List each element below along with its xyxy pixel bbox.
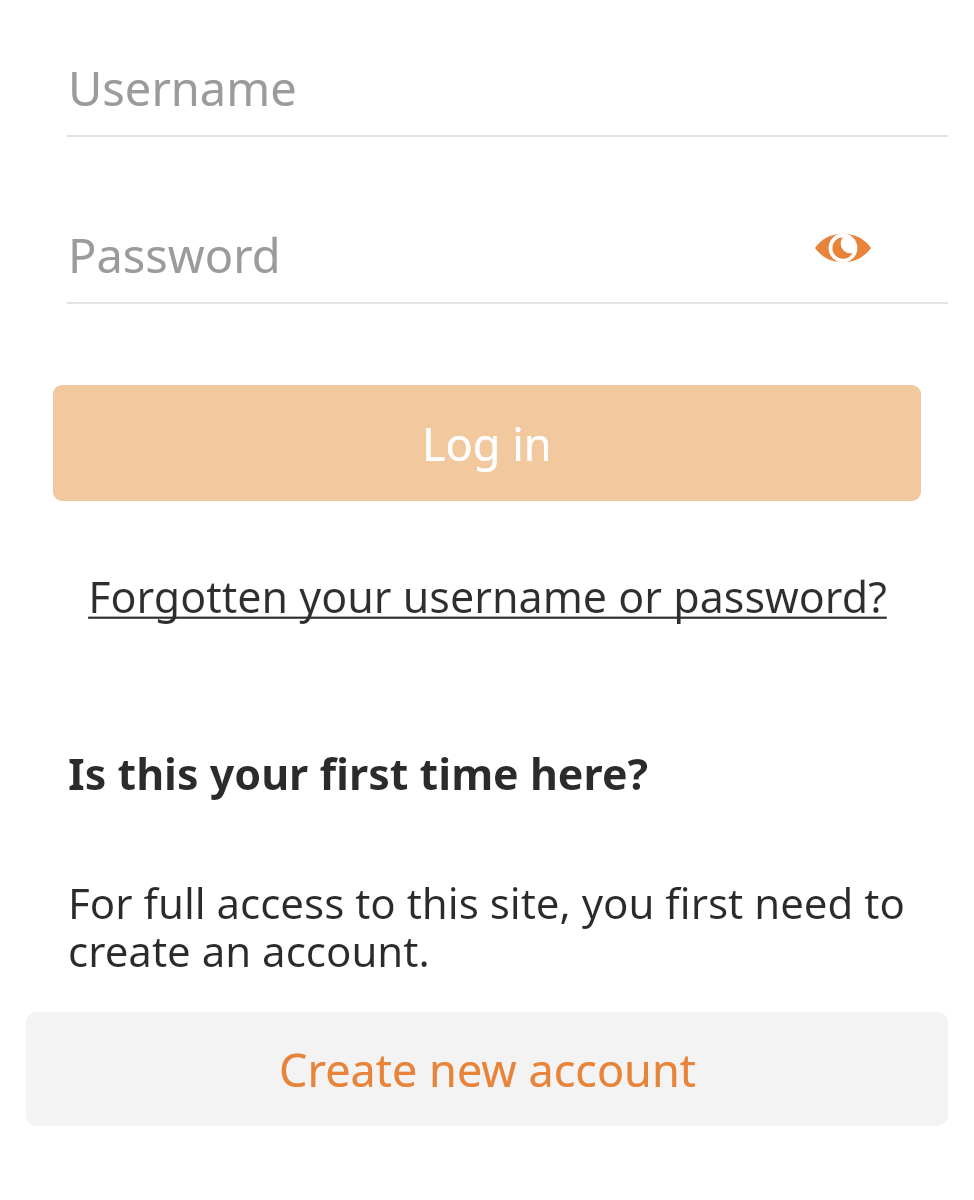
button[interactable]: Forgotten your username or password?	[67, 558, 907, 634]
staticText: Log in	[422, 413, 552, 474]
button[interactable]: Show password	[806, 218, 880, 278]
staticText: Username	[68, 56, 297, 120]
staticText: Create new account	[279, 1039, 696, 1100]
staticText: Is this your first time here?	[68, 744, 649, 803]
button[interactable]: Username	[67, 26, 948, 136]
staticText: Forgotten your username or password?	[88, 567, 887, 626]
staticText: For full access to this site, you first …	[68, 874, 916, 979]
staticText: Password	[68, 223, 281, 287]
button[interactable]: Password	[67, 193, 948, 303]
button[interactable]: Create new account	[26, 1012, 948, 1126]
button[interactable]: Log in	[53, 385, 921, 501]
